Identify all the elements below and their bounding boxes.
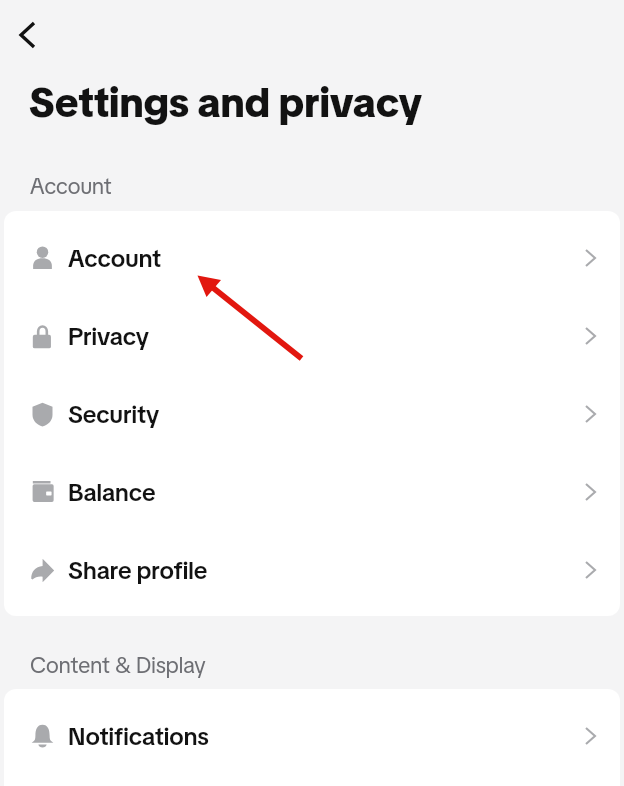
button[interactable]: Security [4,375,620,453]
button[interactable]: Notifications [4,697,620,775]
staticText: Settings and privacy [29,76,423,130]
staticText: Privacy [68,320,150,352]
staticText: Security [68,398,160,430]
staticText: Account [68,242,162,274]
staticText: Share profile [68,554,208,586]
staticText: Balance [68,476,156,508]
staticText: Content & Display [30,650,206,679]
button[interactable]: Privacy [4,297,620,375]
button[interactable]: Balance [4,453,620,531]
button[interactable]: Account [4,219,620,297]
button[interactable]: Back [3,11,51,59]
staticText: Notifications [68,720,209,752]
button[interactable]: Share profile [4,531,620,609]
staticText: Account [30,171,112,200]
